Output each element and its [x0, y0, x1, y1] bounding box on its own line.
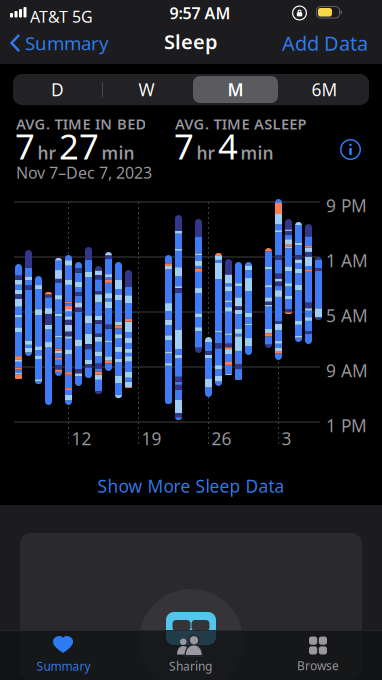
button[interactable]: Add Data	[282, 23, 368, 63]
staticText: 26	[211, 427, 231, 450]
staticText: min	[240, 141, 273, 164]
button[interactable]	[340, 139, 361, 160]
staticText: Add Data	[282, 30, 368, 56]
staticText: 1 PM	[326, 414, 367, 437]
button[interactable]: M	[191, 74, 280, 105]
staticText: M	[227, 78, 243, 101]
staticText: 12	[71, 427, 91, 450]
staticText: 4	[218, 123, 238, 169]
staticText: Summary	[36, 658, 90, 674]
button[interactable]: D	[13, 74, 102, 105]
staticText: Sharing	[169, 658, 212, 674]
staticText: 1 AM	[326, 249, 368, 272]
staticText: 6M	[311, 78, 337, 101]
staticText: Summary	[25, 31, 109, 55]
staticText: 9 PM	[326, 194, 367, 217]
staticText: Sleep	[164, 28, 218, 55]
staticText: 27	[59, 123, 99, 169]
button[interactable]: 6M	[280, 74, 369, 105]
staticText: W	[138, 78, 154, 101]
staticText: hr	[37, 141, 56, 164]
staticText: Browse	[297, 657, 339, 673]
staticText: 3	[281, 427, 291, 450]
staticText: AVG. TIME IN BED	[16, 114, 146, 133]
button[interactable]: Sharing	[127, 630, 254, 680]
staticText: Show More Sleep Data	[97, 474, 284, 497]
staticText: 9:57 AM	[169, 2, 230, 24]
staticText: 9 AM	[326, 359, 368, 382]
staticText: AVG. TIME ASLEEP	[175, 114, 306, 133]
staticText: D	[51, 78, 64, 101]
staticText: 5 AM	[326, 304, 368, 327]
button[interactable]: Show More Sleep Data	[0, 475, 382, 497]
staticText: Nov 7–Dec 7, 2023	[16, 162, 152, 183]
button[interactable]: Summary	[0, 630, 127, 680]
staticText: 7	[15, 123, 35, 169]
button[interactable]: W	[102, 74, 191, 105]
button[interactable]: Browse	[254, 630, 382, 680]
staticText: 5G	[72, 6, 93, 27]
button[interactable]: Summary	[10, 23, 109, 63]
staticText: min	[101, 141, 134, 164]
staticText: AT&T	[30, 6, 68, 27]
staticText: hr	[196, 141, 215, 164]
staticText: 7	[174, 123, 194, 169]
staticText: 19	[141, 427, 161, 450]
